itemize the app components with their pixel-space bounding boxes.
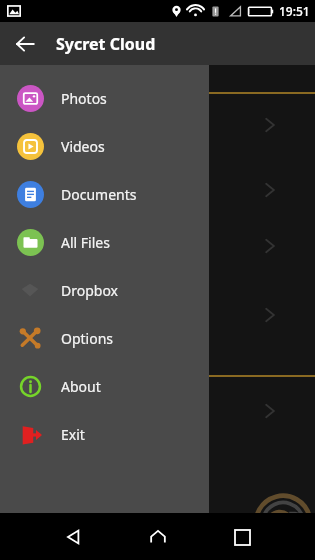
staticText: Options <box>61 329 114 348</box>
staticText: Dropbox <box>61 281 119 300</box>
button[interactable] <box>258 113 282 137</box>
staticText: Sycret Cloud <box>56 33 156 55</box>
staticText: Documents <box>61 185 137 204</box>
staticText: 19:51 <box>279 3 310 19</box>
button[interactable]: Exit <box>0 410 209 458</box>
button[interactable]: Recents <box>225 520 259 554</box>
button[interactable] <box>258 178 282 202</box>
staticText: All Files <box>61 233 110 252</box>
button[interactable]: All Files <box>0 218 209 266</box>
button[interactable]: Back <box>56 520 90 554</box>
staticText: About <box>61 377 101 396</box>
staticText: Exit <box>61 425 85 444</box>
button[interactable] <box>258 234 282 258</box>
button[interactable]: Options <box>0 314 209 362</box>
button[interactable] <box>258 399 282 423</box>
button[interactable]: Home <box>141 520 175 554</box>
staticText: Videos <box>61 137 105 156</box>
button[interactable]: About <box>0 362 209 410</box>
button[interactable] <box>258 303 282 327</box>
staticText: Photos <box>61 89 107 108</box>
button[interactable]: Photos <box>0 74 209 122</box>
button[interactable]: Videos <box>0 122 209 170</box>
button[interactable]: Dropbox <box>0 266 209 314</box>
button[interactable]: Documents <box>0 170 209 218</box>
button[interactable]: Back <box>9 28 41 60</box>
